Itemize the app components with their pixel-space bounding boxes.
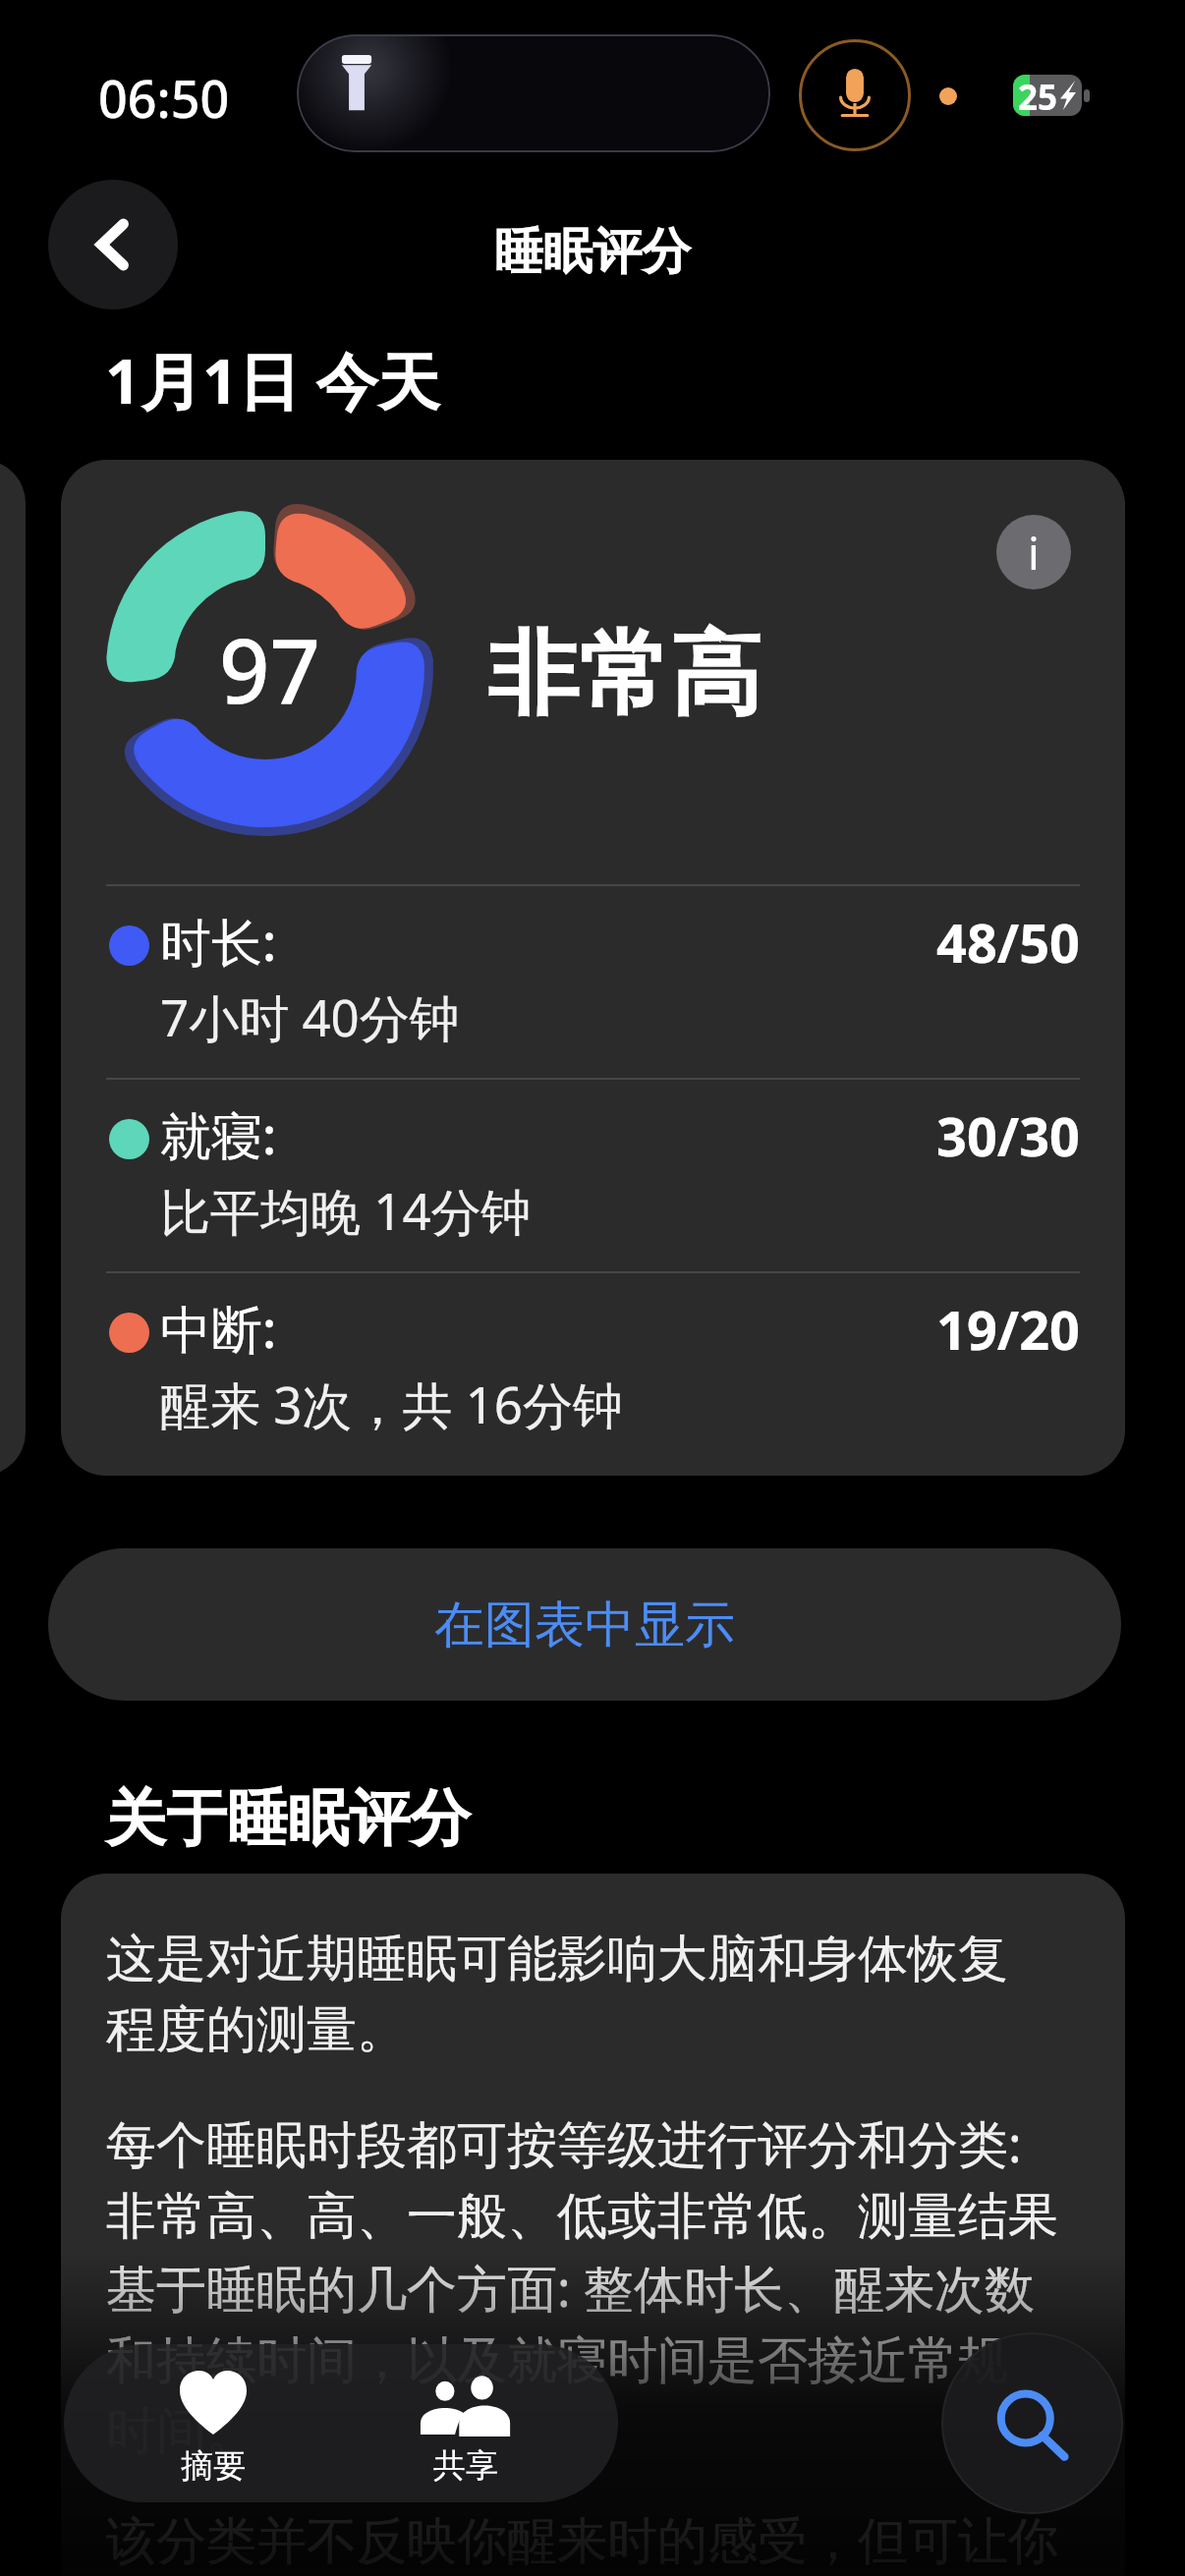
staticText: 共享 <box>433 2445 498 2487</box>
staticText: 关于睡眠评分 <box>105 1780 471 1857</box>
staticText: 每个睡眠时段都可按等级进行评分和分类: 非常高、高、一般、低或非常低。测量结果 … <box>106 2108 1058 2463</box>
button[interactable]: Search <box>941 2332 1123 2514</box>
staticText: 时长: <box>160 906 277 976</box>
button[interactable]: Back <box>48 180 178 309</box>
staticText: 比平均晚 14分钟 <box>160 1176 532 1245</box>
button[interactable]: 摘要 <box>74 2344 353 2502</box>
staticText: 该分类并不反映你醒来时的感受，但可让你 大致了解身体是否得到足够睡眠进行休息和 … <box>106 2510 1058 2576</box>
button[interactable]: 在图表中显示 <box>48 1548 1121 1701</box>
staticText: 06:50 <box>98 63 230 133</box>
staticText: 摘要 <box>181 2445 246 2487</box>
button[interactable]: Info <box>996 515 1071 589</box>
staticText: 30/30 <box>936 1099 1080 1172</box>
staticText: 48/50 <box>936 906 1080 979</box>
staticText: 1月1日 今天 <box>105 338 440 422</box>
staticText: 25 <box>1018 75 1058 115</box>
staticText: 97 <box>219 609 320 730</box>
staticText: 在图表中显示 <box>434 1594 735 1656</box>
button[interactable]: 共享 <box>341 2344 591 2502</box>
staticText: 睡眠评分 <box>494 221 691 283</box>
staticText: 7小时 40分钟 <box>160 982 460 1051</box>
staticText: 非常高 <box>487 617 762 732</box>
staticText: 中断: <box>160 1293 277 1363</box>
staticText: 这是对近期睡眠可能影响大脑和身体恢复 程度的测量。 <box>106 1928 1008 2061</box>
staticText: 醒来 3次，共 16分钟 <box>160 1370 624 1438</box>
staticText: i <box>1028 522 1040 584</box>
staticText: 19/20 <box>936 1293 1080 1366</box>
staticText: 就寝: <box>160 1099 277 1169</box>
